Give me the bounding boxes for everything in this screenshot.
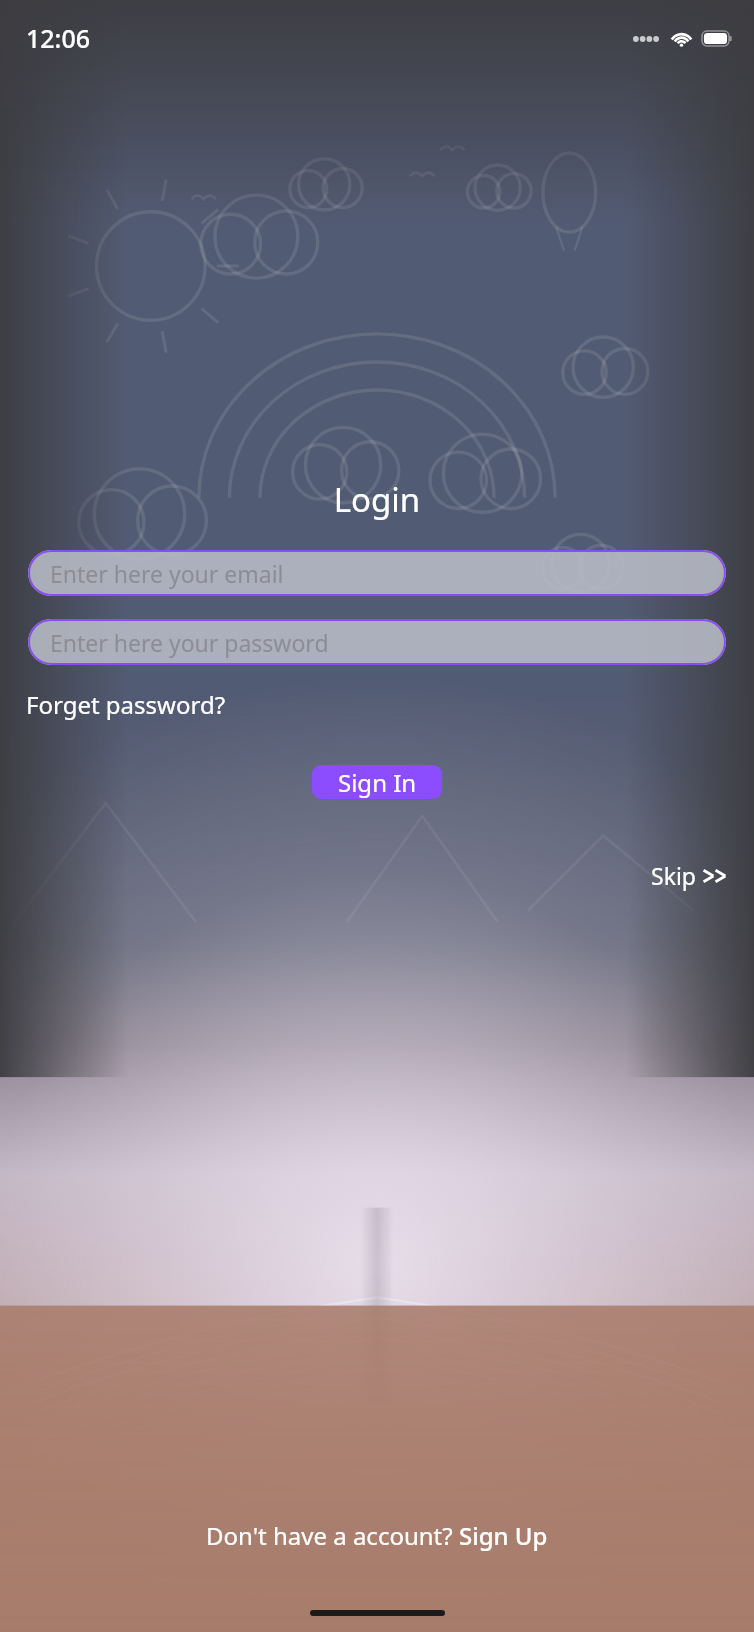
staticText: Sign In — [338, 766, 417, 799]
button[interactable]: Enter here your password — [28, 619, 726, 665]
staticText: 12:06 — [26, 21, 91, 55]
button[interactable]: Don't have a account? — [0, 1516, 754, 1555]
button[interactable]: Forget password? — [26, 686, 226, 723]
staticText: Login — [0, 477, 754, 522]
staticText: Sign Up — [459, 1519, 548, 1552]
staticText: Enter here your email — [50, 558, 284, 589]
staticText: Skip — [651, 860, 702, 891]
button[interactable]: Skip — [651, 857, 754, 894]
staticText: Don't have a account? — [206, 1519, 459, 1552]
staticText: Enter here your password — [50, 627, 329, 658]
button[interactable]: Enter here your email — [28, 550, 726, 596]
button[interactable]: Sign In — [312, 765, 442, 799]
